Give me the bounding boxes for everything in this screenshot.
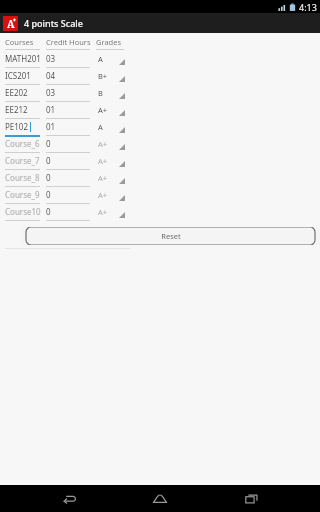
staticText: 01: [46, 104, 56, 115]
button[interactable]: EE202: [5, 86, 46, 103]
button[interactable]: Grade selector: [96, 120, 130, 137]
button[interactable]: 03: [46, 86, 96, 103]
staticText: ICS201: [5, 70, 31, 81]
staticText: A+: [98, 173, 108, 183]
staticText: A: [7, 17, 15, 31]
button[interactable]: 04: [46, 69, 96, 86]
staticText: Credit Hours: [46, 37, 91, 47]
staticText: Grades: [96, 37, 122, 47]
staticText: 03: [46, 87, 56, 98]
button[interactable]: 0: [46, 154, 96, 171]
button[interactable]: PE102: [5, 120, 46, 137]
staticText: Courses: [5, 37, 34, 47]
staticText: A+: [98, 139, 108, 149]
button[interactable]: 0: [46, 137, 96, 154]
staticText: MATH201: [5, 53, 41, 64]
button[interactable]: Grade selector: [96, 69, 130, 86]
button[interactable]: 03: [46, 52, 96, 69]
button[interactable]: 0: [46, 205, 96, 222]
button[interactable]: MATH201: [5, 52, 46, 69]
button[interactable]: Course_7: [5, 154, 46, 171]
staticText: 4:13: [299, 1, 317, 13]
staticText: A+: [98, 190, 108, 200]
staticText: 03: [46, 53, 56, 64]
button[interactable]: Grade selector: [96, 188, 130, 205]
staticText: Course_6: [5, 138, 40, 149]
button[interactable]: Course_9: [5, 188, 46, 205]
staticText: EE212: [5, 104, 28, 115]
staticText: 01: [46, 121, 56, 132]
button[interactable]: Course10: [5, 205, 46, 222]
staticText: EE202: [5, 87, 28, 98]
staticText: A+: [98, 207, 108, 217]
staticText: Reset: [161, 231, 181, 241]
staticText: Course_7: [5, 155, 40, 166]
button[interactable]: 01: [46, 103, 96, 120]
staticText: A+: [98, 105, 108, 115]
staticText: B: [98, 88, 103, 98]
staticText: A: [98, 54, 103, 64]
button[interactable]: Course_6: [5, 137, 46, 154]
button[interactable]: Course_8: [5, 171, 46, 188]
button[interactable]: Back: [47, 485, 91, 512]
button[interactable]: 01: [46, 120, 96, 137]
button[interactable]: Grade selector: [96, 86, 130, 103]
button[interactable]: ICS201: [5, 69, 46, 86]
button[interactable]: 0: [46, 171, 96, 188]
staticText: B+: [98, 71, 108, 81]
staticText: 0: [46, 138, 51, 149]
button[interactable]: Grade selector: [96, 103, 130, 120]
staticText: A+: [98, 156, 108, 166]
staticText: Course_8: [5, 172, 40, 183]
button[interactable]: Reset: [21, 227, 320, 245]
staticText: Course_9: [5, 189, 40, 200]
staticText: 0: [46, 172, 51, 183]
staticText: A: [98, 122, 103, 132]
button[interactable]: EE212: [5, 103, 46, 120]
staticText: PE102: [5, 121, 29, 132]
button[interactable]: Grade selector: [96, 171, 130, 188]
staticText: 04: [46, 70, 56, 81]
button[interactable]: Grade selector: [96, 52, 130, 69]
button[interactable]: 0: [46, 188, 96, 205]
staticText: 0: [46, 189, 51, 200]
staticText: 4 points Scale: [24, 17, 83, 29]
staticText: 0: [46, 206, 51, 217]
button[interactable]: Grade selector: [96, 154, 130, 171]
button[interactable]: Recent apps: [229, 485, 273, 512]
button[interactable]: Grade selector: [96, 137, 130, 154]
staticText: 0: [46, 155, 51, 166]
button[interactable]: Home: [138, 485, 182, 512]
button[interactable]: Grade selector: [96, 205, 130, 222]
staticText: Course10: [5, 206, 41, 217]
